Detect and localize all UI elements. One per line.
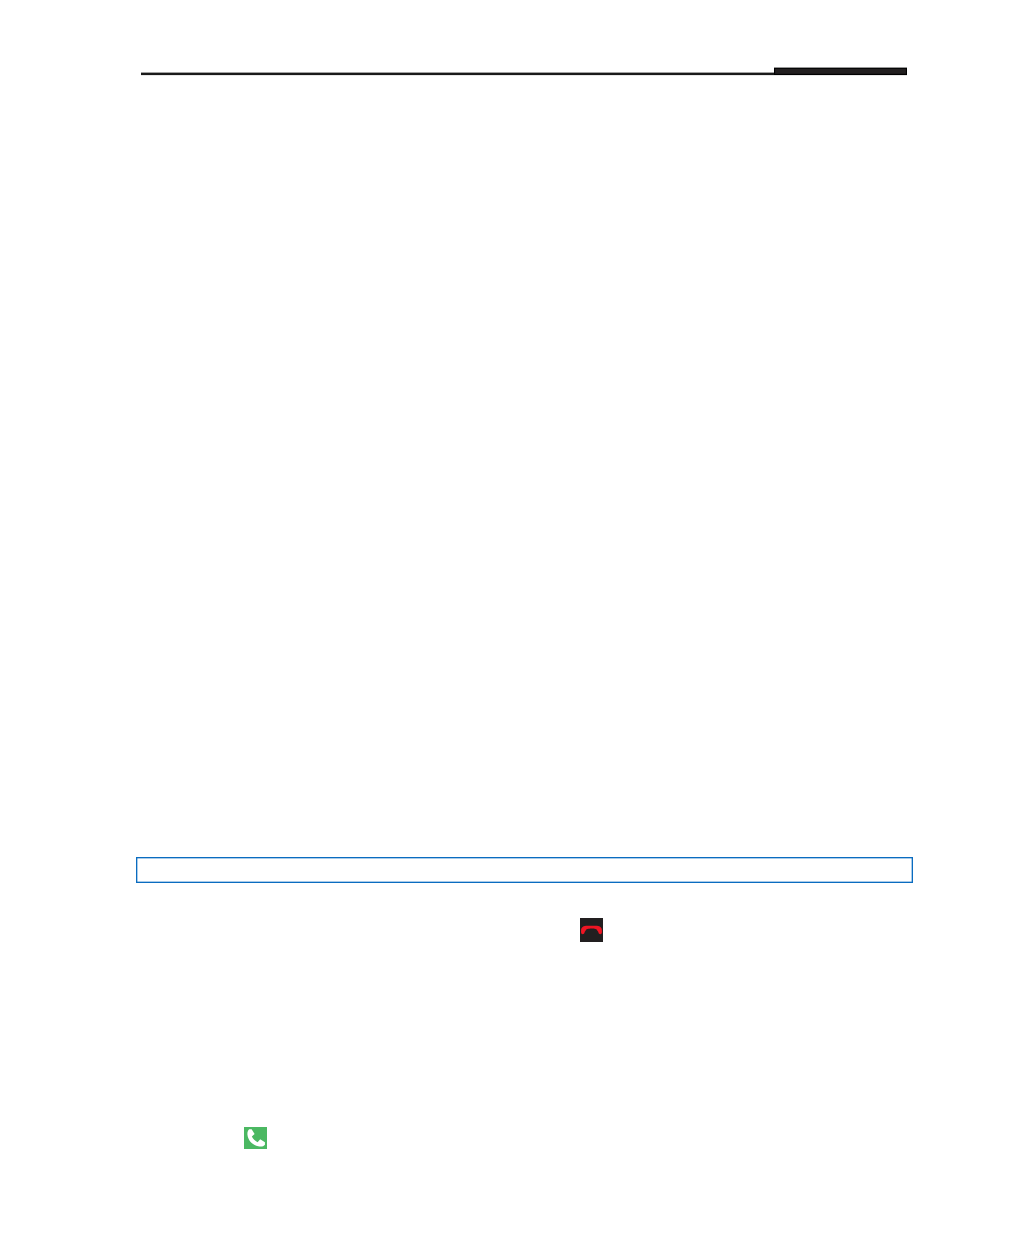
button[interactable]: Text field xyxy=(130,851,919,889)
button[interactable]: Call xyxy=(244,1127,267,1149)
button[interactable]: End call xyxy=(580,918,603,942)
button[interactable]: Playback progress xyxy=(141,62,907,86)
